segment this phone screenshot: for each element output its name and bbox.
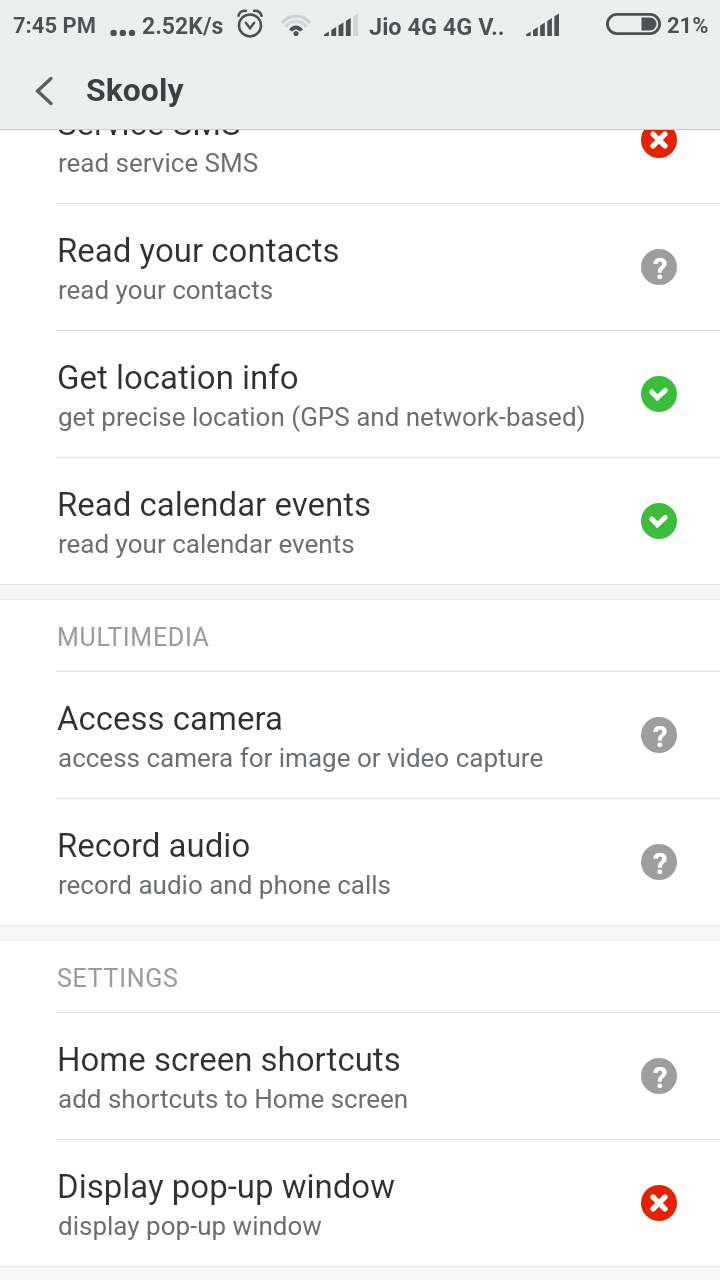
staticText: ? [653,252,668,286]
button[interactable]: Home screen shortcuts [0,1012,720,1139]
staticText: 7:45 PM [13,13,96,39]
staticText: read service SMS [58,148,259,178]
staticText: Home screen shortcuts [57,1040,401,1079]
button[interactable]: Back [17,52,71,129]
staticText: 21% [667,13,709,39]
staticText: 2.52K/s [142,13,224,40]
other: Permission denied [641,1185,677,1221]
button[interactable]: Record audio [0,798,720,925]
button[interactable]: Service SMS [0,76,720,203]
staticText: access camera for image or video capture [58,743,544,773]
staticText: read your contacts [58,275,274,305]
button[interactable]: Read calendar events [0,457,720,584]
staticText: Jio 4G 4G V.. [369,13,505,41]
other: Permission unknown [641,717,677,753]
button[interactable]: Read your contacts [0,203,720,330]
other: Permission unknown [641,249,677,285]
staticText: Service SMS [57,104,241,143]
staticText: display pop-up window [58,1211,322,1241]
staticText: Read your contacts [57,231,340,270]
staticText: Get location info [57,358,299,397]
staticText: Access camera [57,699,283,738]
other: Permission denied [641,122,677,158]
other: Permission unknown [641,1058,677,1094]
staticText: ? [653,847,668,881]
staticText: MULTIMEDIA [57,623,210,652]
other: Permission allowed [641,503,677,539]
button[interactable]: Display pop-up window [0,1139,720,1266]
staticText: Skooly [86,71,184,109]
staticText: Record audio [57,826,251,865]
staticText: ? [653,1061,668,1095]
staticText: SETTINGS [57,964,179,993]
staticText: record audio and phone calls [58,870,391,900]
other: Permission allowed [641,376,677,412]
staticText: Read calendar events [57,485,372,524]
staticText: add shortcuts to Home screen [58,1084,409,1114]
staticText: get precise location (GPS and network-ba… [58,402,586,432]
button[interactable]: Access camera [0,671,720,798]
staticText: ? [653,720,668,754]
other: Permission unknown [641,844,677,880]
button[interactable]: Get location info [0,330,720,457]
staticText: read your calendar events [58,529,355,559]
staticText: Display pop-up window [57,1167,395,1206]
